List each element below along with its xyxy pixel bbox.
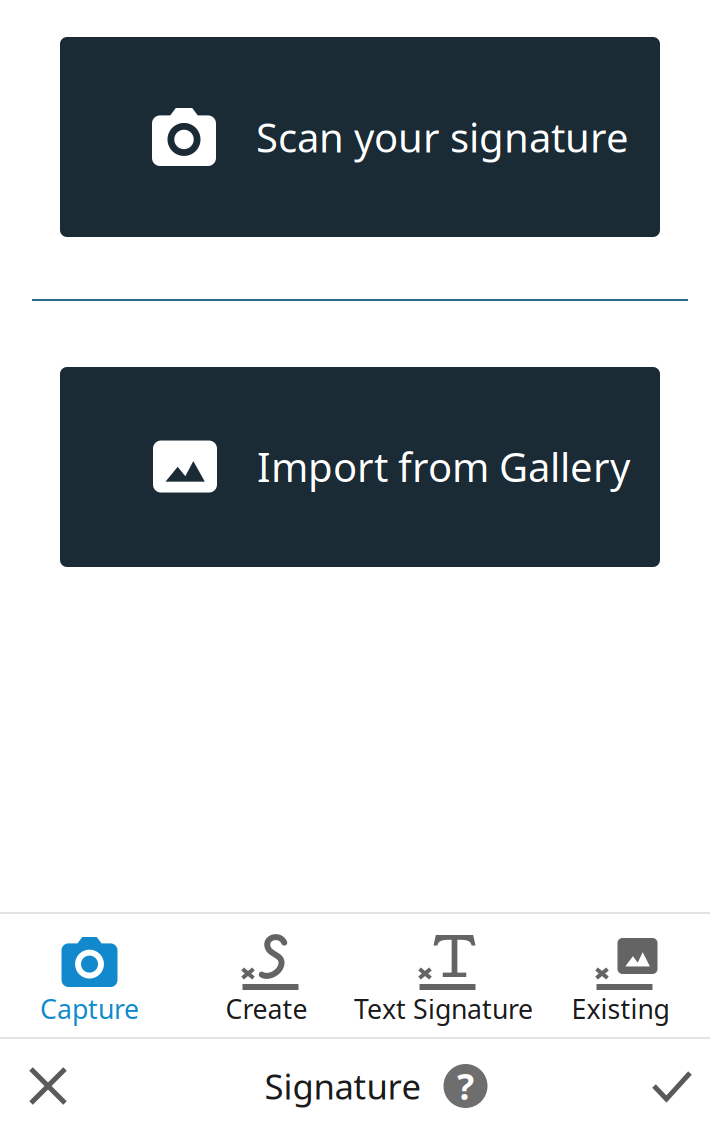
staticText: Capture [40, 991, 139, 1026]
button[interactable]: Create [178, 914, 355, 1037]
staticText: Create [225, 991, 307, 1026]
button[interactable]: Help [443, 1064, 487, 1108]
staticText: Signature [264, 1063, 421, 1109]
button[interactable]: Done [624, 1043, 710, 1124]
button[interactable]: Import from Gallery [60, 367, 660, 567]
staticText: Existing [571, 991, 669, 1026]
button[interactable]: Capture [1, 914, 178, 1037]
staticText: Scan your signature [256, 110, 629, 163]
staticText: Import from Gallery [257, 440, 630, 493]
button[interactable]: Scan your signature [60, 37, 660, 237]
button[interactable]: Text Signature [355, 914, 532, 1037]
button[interactable]: Close [0, 1043, 96, 1124]
staticText: ? [457, 1062, 474, 1110]
button[interactable]: Existing [532, 914, 709, 1037]
staticText: Text Signature [354, 991, 533, 1026]
